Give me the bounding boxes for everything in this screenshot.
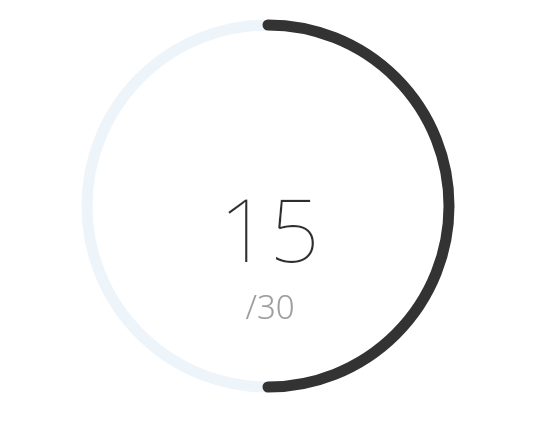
staticText: /30	[245, 284, 295, 329]
staticText: 15	[219, 168, 320, 288]
button[interactable]: Progress 15 of 30	[0, 0, 536, 440]
